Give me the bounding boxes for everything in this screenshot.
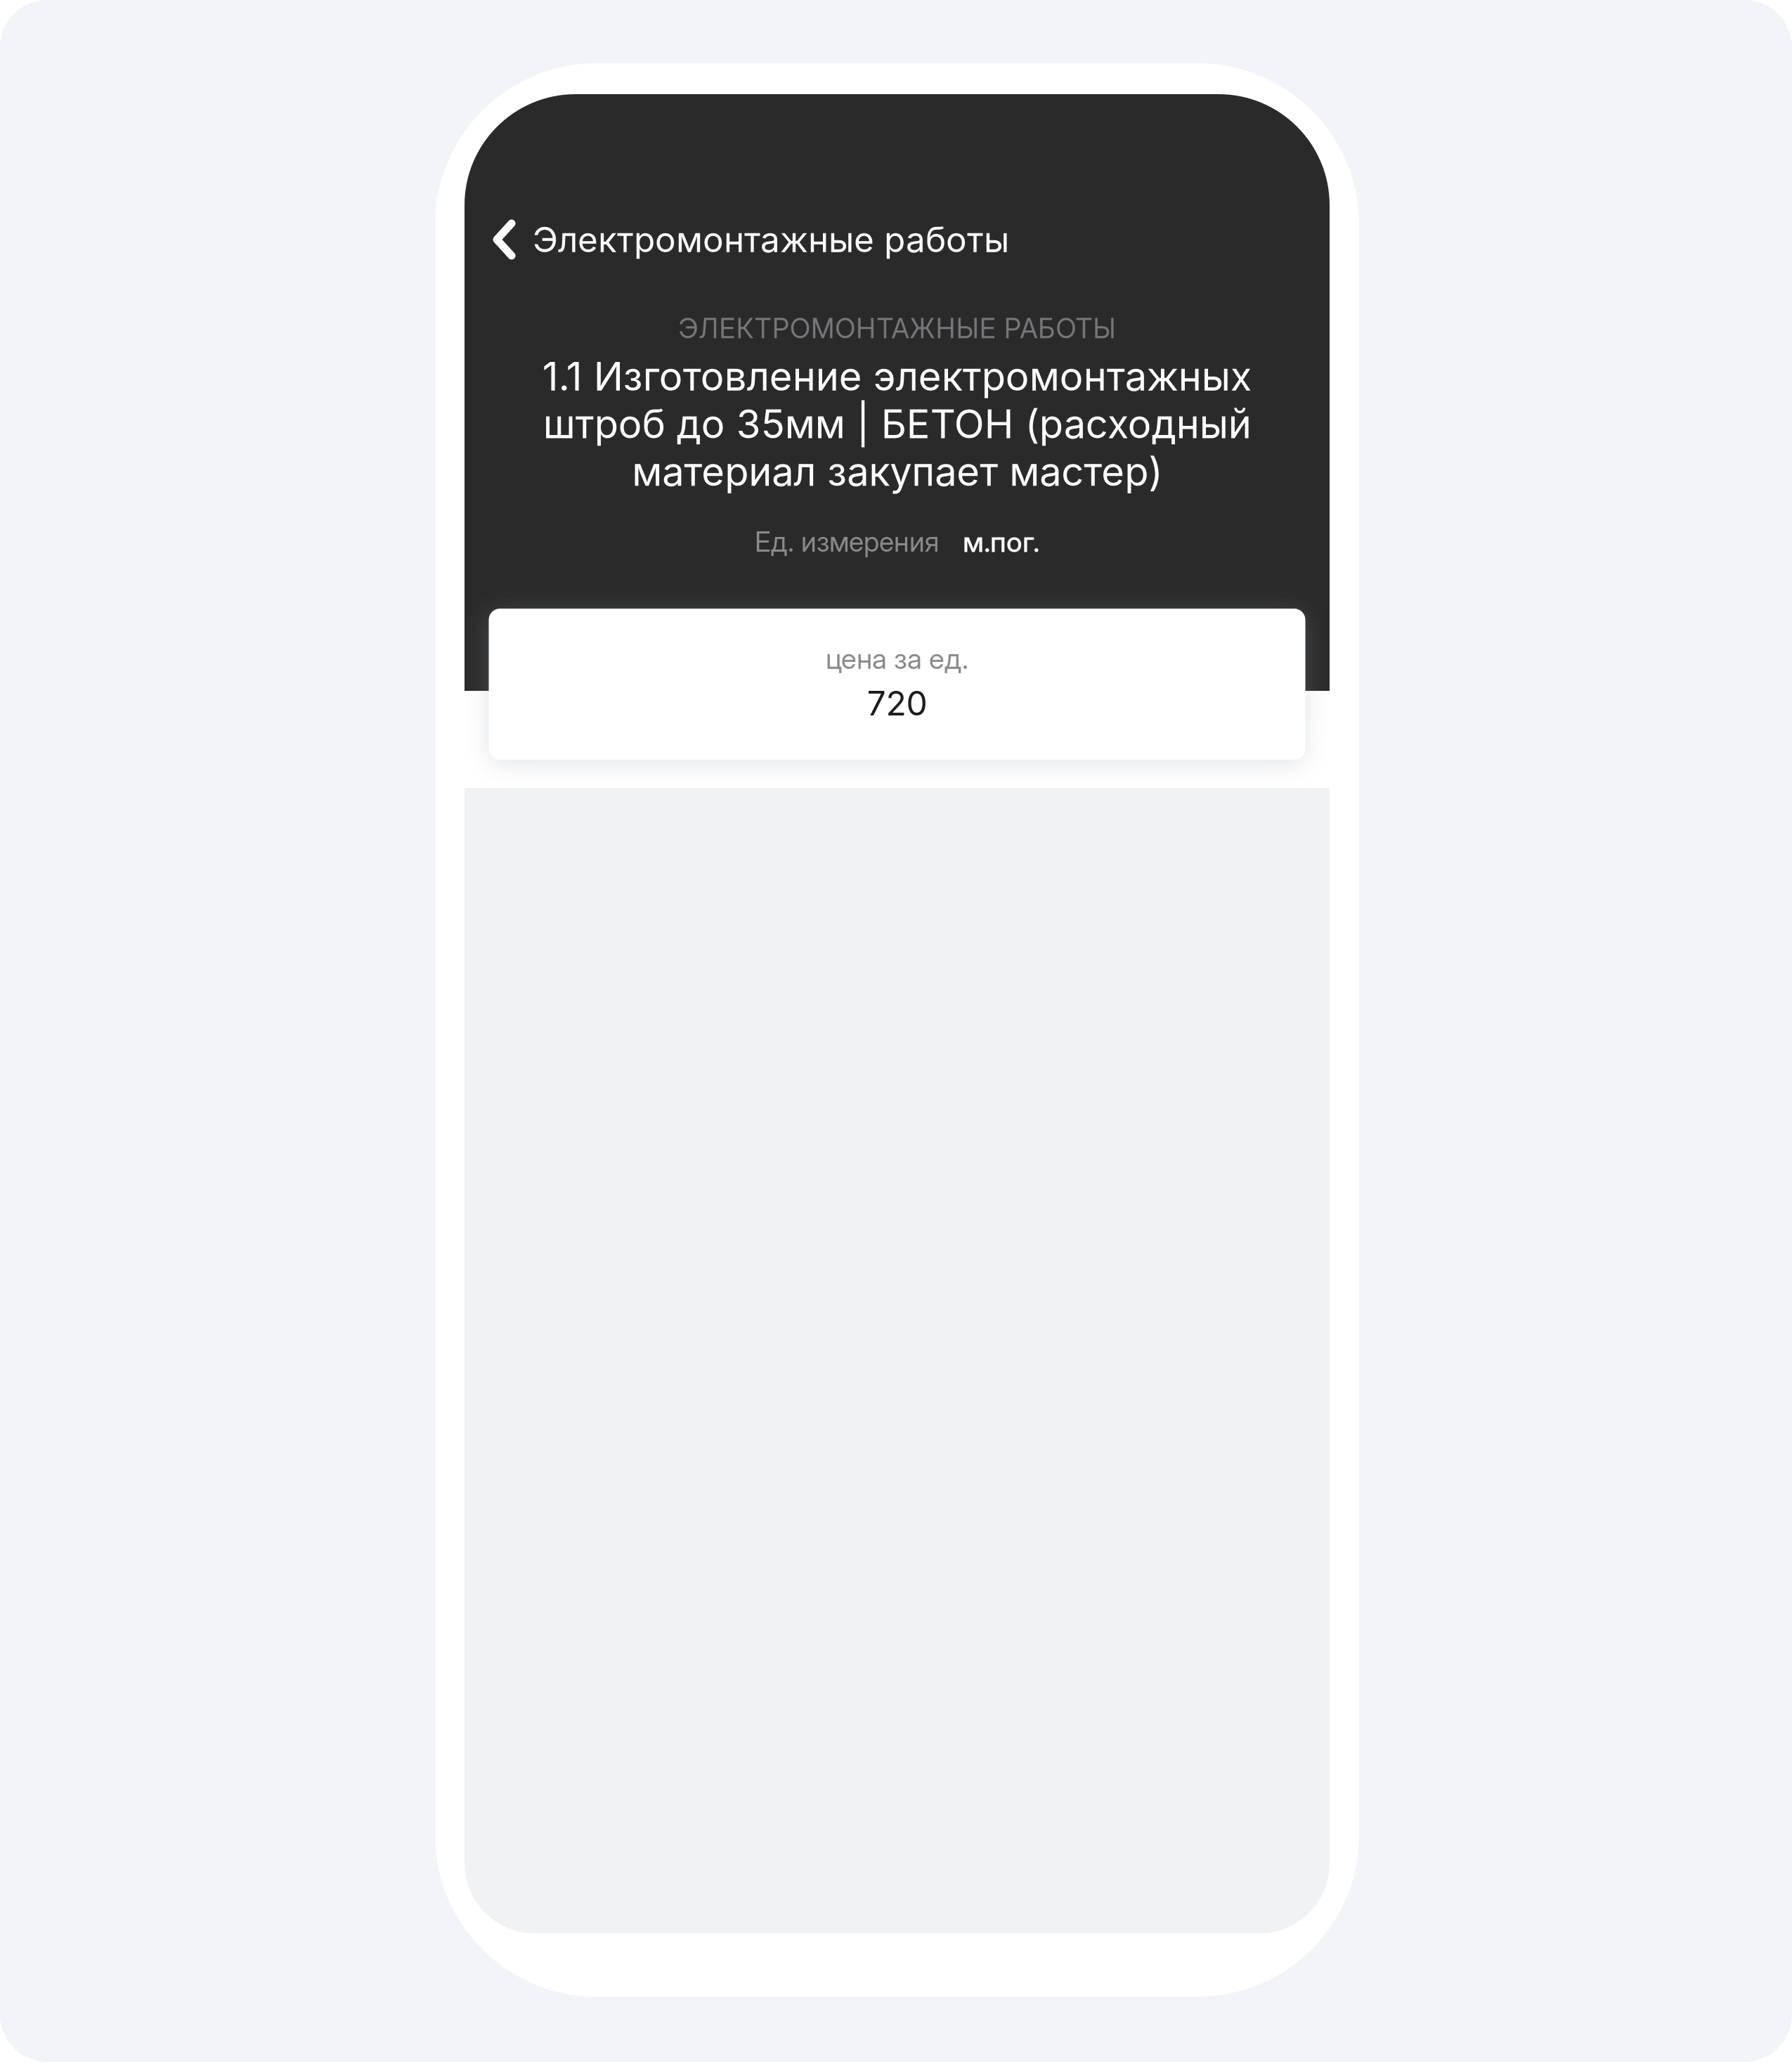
- staticText: 1.1 Изготовление электромонтажных штроб …: [542, 352, 1252, 495]
- staticText: Электромонтажные работы: [533, 219, 1009, 261]
- button[interactable]: Назад: Электромонтажные работы: [465, 207, 1330, 272]
- button[interactable]: цена за ед.: [489, 609, 1305, 760]
- staticText: Ед. измерения: [755, 525, 939, 558]
- staticText: ЭЛЕКТРОМОНТАЖНЫЕ РАБОТЫ: [678, 312, 1116, 345]
- staticText: цена за ед.: [826, 642, 968, 676]
- staticText: м.пог.: [963, 525, 1039, 559]
- staticText: 720: [867, 683, 927, 724]
